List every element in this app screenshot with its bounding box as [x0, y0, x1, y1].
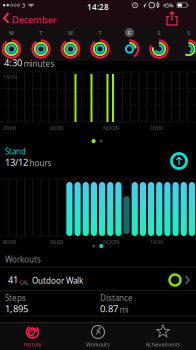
staticText: minutes — [23, 58, 54, 69]
staticText: F — [128, 29, 131, 37]
button[interactable]: Achievements — [130, 323, 195, 350]
staticText: 06:00 — [50, 124, 63, 132]
staticText: S — [187, 29, 190, 37]
staticText: 4:30 — [4, 56, 22, 69]
staticText: Outdoor Walk — [32, 275, 83, 286]
staticText: 13/12 — [5, 156, 28, 168]
staticText: 45% — [163, 2, 173, 9]
staticText: NOON — [103, 124, 119, 132]
staticText: 06:00 — [50, 238, 63, 246]
staticText: December — [12, 13, 57, 26]
staticText: mi — [119, 304, 128, 315]
staticText: 00:00 — [3, 124, 16, 132]
staticText: History — [23, 341, 41, 348]
staticText: 18:00 — [150, 124, 163, 132]
staticText: 14:28 — [87, 1, 109, 12]
button[interactable]: Workouts — [65, 323, 130, 350]
button[interactable]: Share — [160, 12, 184, 28]
staticText: S — [157, 29, 160, 37]
staticText: Distance — [100, 292, 133, 303]
staticText: Workouts — [5, 254, 41, 265]
staticText: W — [68, 29, 73, 37]
staticText: 0.87 — [100, 302, 118, 315]
staticText: Achievements — [145, 341, 180, 348]
staticText: Steps — [5, 292, 26, 303]
staticText: 1MIN — [3, 73, 17, 81]
staticText: 18:00 — [150, 238, 163, 246]
staticText: Workouts — [86, 341, 110, 348]
staticText: T — [39, 29, 42, 37]
staticText: hours — [29, 158, 51, 168]
staticText: 3 — [22, 2, 25, 9]
staticText: NOON — [103, 238, 119, 246]
staticText: Stand — [5, 146, 26, 157]
button[interactable]: History — [0, 323, 65, 350]
button[interactable]: Stand details — [169, 151, 189, 171]
staticText: 1,895 — [5, 302, 28, 315]
staticText: 41 — [8, 273, 18, 286]
button[interactable]: Back — [0, 0, 60, 26]
staticText: M — [9, 29, 14, 37]
staticText: 00:00 — [3, 238, 16, 246]
button[interactable]: 41 — [0, 266, 196, 290]
staticText: T — [98, 29, 101, 37]
staticText: CAL — [19, 279, 28, 286]
